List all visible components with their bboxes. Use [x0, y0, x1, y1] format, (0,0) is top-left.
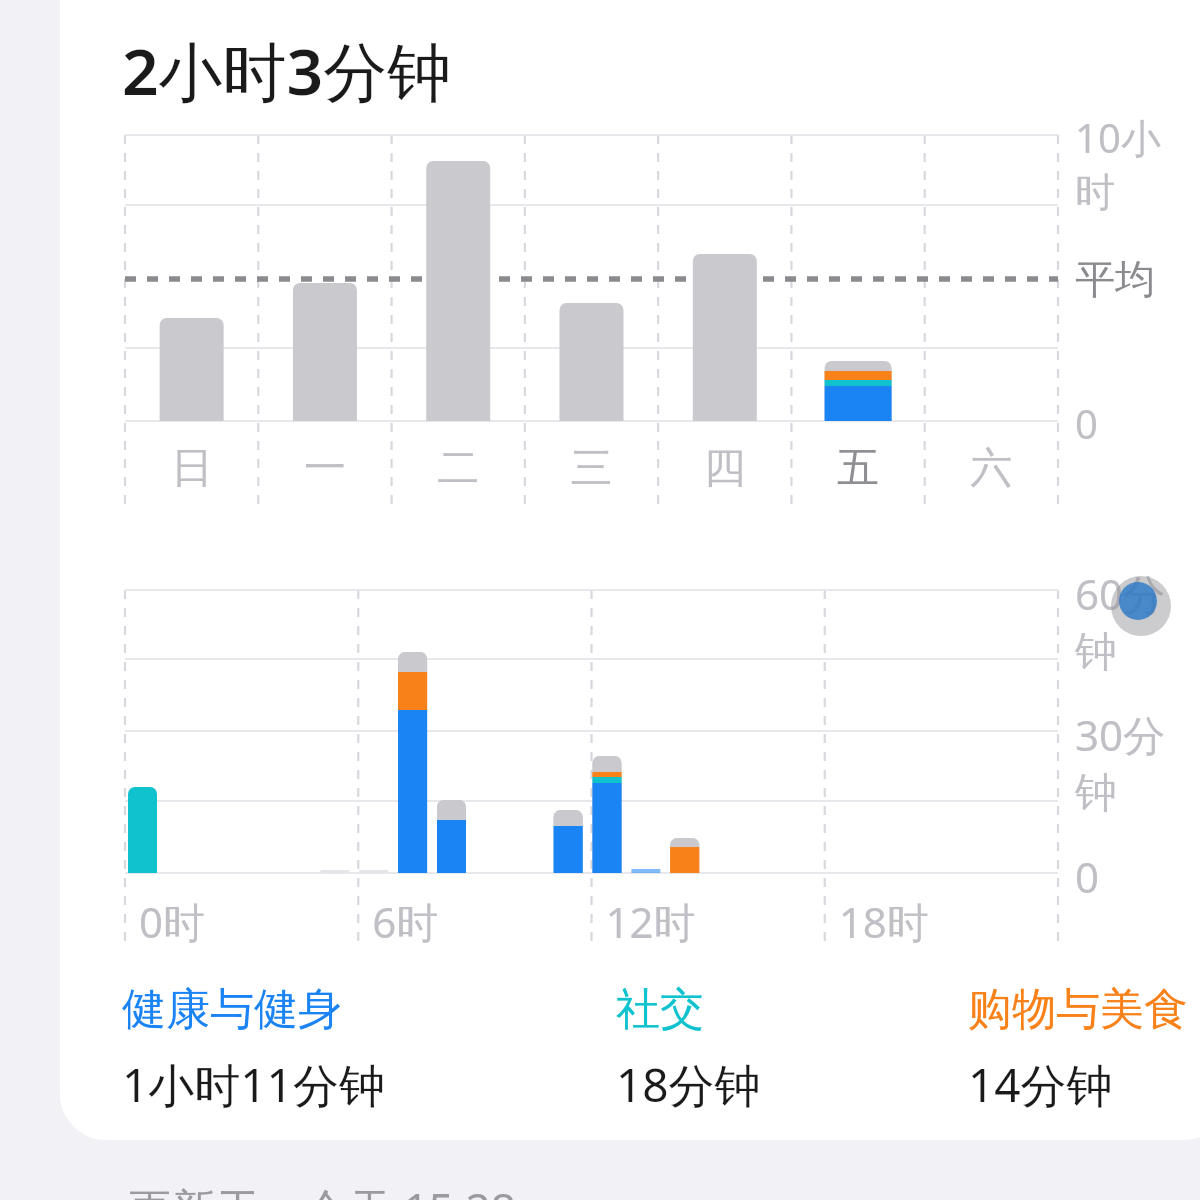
button[interactable]: Screen Time usage chart: [0, 0, 1200, 1200]
